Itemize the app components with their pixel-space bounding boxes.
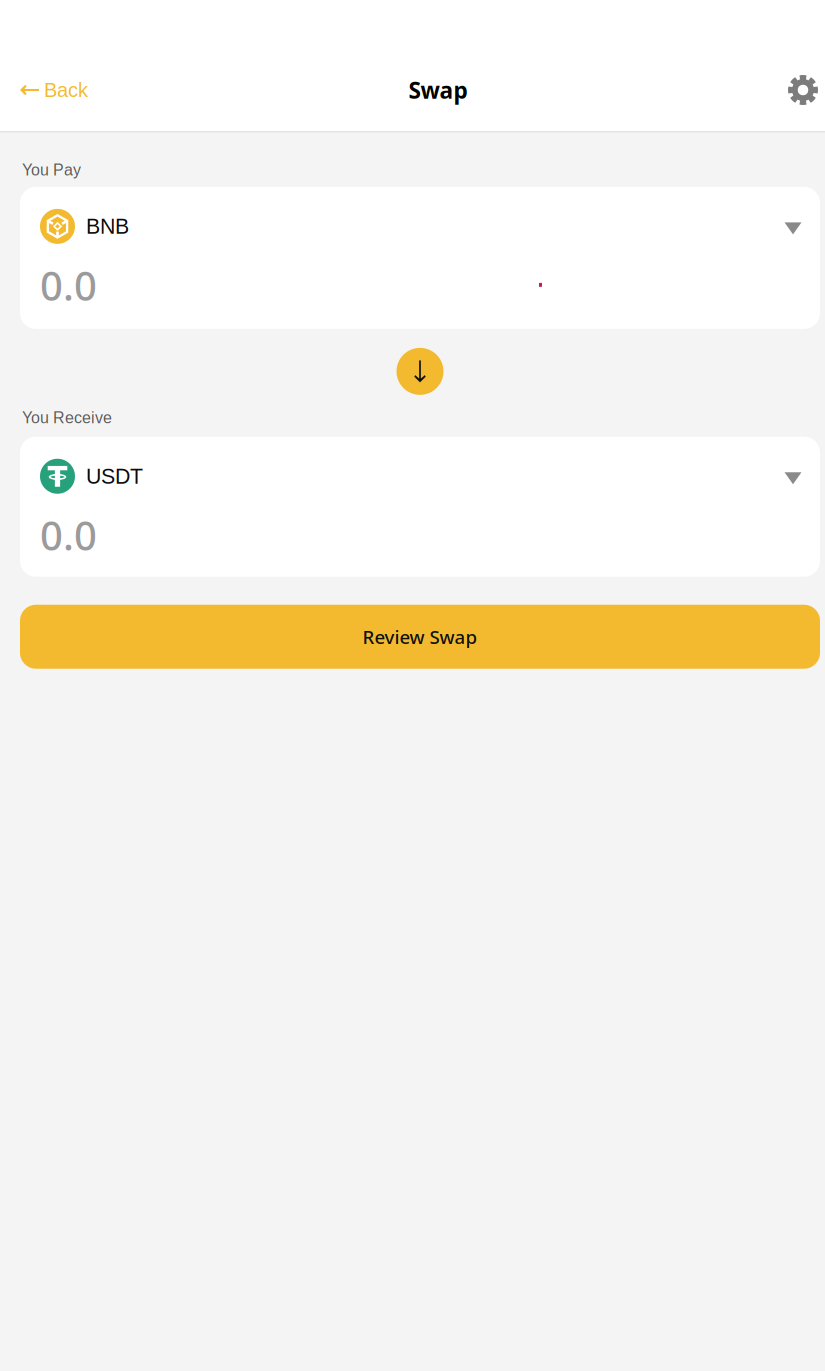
- staticText: Swap: [408, 75, 467, 105]
- button[interactable]: Settings: [788, 68, 818, 112]
- staticText: Review Swap: [362, 624, 477, 649]
- button[interactable]: Review Swap: [20, 605, 820, 669]
- staticText: BNB: [86, 214, 129, 238]
- button[interactable]: Switch tokens: [396, 348, 443, 395]
- button[interactable]: Choose BNB: [776, 209, 810, 243]
- staticText: USDT: [86, 464, 143, 488]
- staticText: You Receive: [22, 409, 112, 427]
- button[interactable]: BNB: [40, 209, 129, 244]
- button[interactable]: Back: [20, 68, 88, 112]
- staticText: You Pay: [22, 161, 81, 179]
- staticText: 0.0: [40, 508, 97, 562]
- button[interactable]: USDT: [40, 459, 143, 494]
- staticText: 0.0: [40, 258, 97, 312]
- staticText: Back: [44, 79, 88, 101]
- button[interactable]: Choose USDT: [776, 459, 810, 493]
